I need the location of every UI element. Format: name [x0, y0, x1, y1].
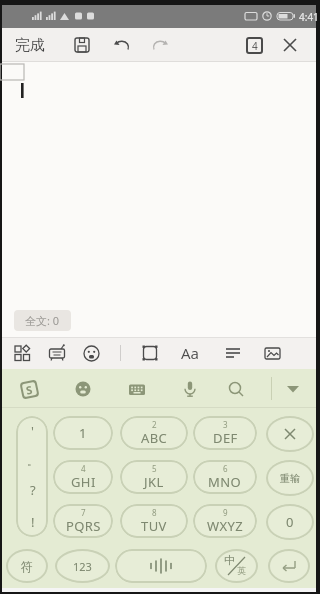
staticText: 4 [252, 39, 258, 53]
button[interactable]: Aa [176, 341, 204, 365]
staticText: 英 [237, 565, 246, 576]
button[interactable]: 6 [193, 460, 257, 494]
button[interactable]: 9 [193, 504, 257, 538]
button[interactable]: 0 [266, 504, 314, 540]
staticText: JKL [144, 473, 164, 491]
button[interactable] [70, 376, 96, 402]
button[interactable]: 完成 [8, 28, 52, 62]
staticText: ABC [141, 429, 168, 447]
button[interactable] [280, 376, 306, 402]
staticText: 5 [152, 463, 157, 474]
button[interactable]: 5 [120, 460, 188, 494]
button[interactable] [45, 341, 69, 365]
button[interactable] [266, 416, 314, 452]
button[interactable] [268, 549, 310, 583]
button[interactable] [10, 341, 34, 365]
staticText: 完成 [15, 36, 45, 55]
staticText: 123 [73, 559, 92, 574]
staticText: 全文: 0 [25, 313, 60, 328]
button[interactable] [276, 31, 304, 59]
staticText: ! [31, 513, 35, 531]
button[interactable] [115, 549, 207, 583]
button[interactable]: 重输 [266, 460, 314, 496]
button[interactable]: 7 [53, 504, 113, 538]
button[interactable] [68, 31, 96, 59]
staticText: 符 [21, 559, 33, 574]
button[interactable] [138, 341, 162, 365]
button[interactable] [146, 31, 174, 59]
staticText: PQRS [66, 517, 101, 535]
button[interactable]: 1 [53, 416, 113, 450]
staticText: TUV [141, 517, 167, 535]
staticText: 6 [223, 463, 228, 474]
button[interactable] [177, 376, 203, 402]
button[interactable] [124, 376, 150, 402]
button[interactable] [108, 31, 136, 59]
staticText: 4:41 [299, 10, 319, 24]
button[interactable]: 中 [215, 549, 258, 583]
button[interactable]: 4 [246, 37, 263, 54]
button[interactable] [79, 341, 103, 365]
staticText: MNO [208, 473, 242, 491]
staticText: 中 [224, 553, 235, 567]
button[interactable]: 8 [120, 504, 188, 538]
button[interactable] [221, 341, 245, 365]
staticText: DEF [213, 429, 238, 447]
staticText: S [24, 381, 34, 397]
button[interactable] [260, 341, 284, 365]
staticText: 2 [152, 419, 157, 430]
button[interactable]: 123 [55, 549, 110, 583]
button[interactable]: 4 [53, 460, 113, 494]
staticText: GHI [71, 473, 96, 491]
button[interactable]: 符 [6, 549, 48, 583]
button[interactable]: S [16, 376, 42, 402]
staticText: 。 [27, 454, 38, 468]
staticText: ? [30, 481, 36, 499]
staticText: Aa [181, 343, 200, 363]
button[interactable]: 2 [120, 416, 188, 450]
staticText: ' [31, 422, 34, 440]
staticText: 1 [79, 424, 87, 442]
staticText: 3 [223, 419, 228, 430]
button[interactable]: ' [16, 416, 48, 537]
staticText: 7 [81, 507, 86, 518]
staticText: 重输 [280, 472, 300, 485]
button[interactable] [223, 376, 249, 402]
staticText: 4 [81, 463, 86, 474]
button[interactable]: 3 [193, 416, 257, 450]
staticText: 0 [286, 513, 294, 531]
staticText: WXYZ [207, 517, 244, 535]
staticText: 9 [223, 507, 228, 518]
staticText: 8 [152, 507, 157, 518]
